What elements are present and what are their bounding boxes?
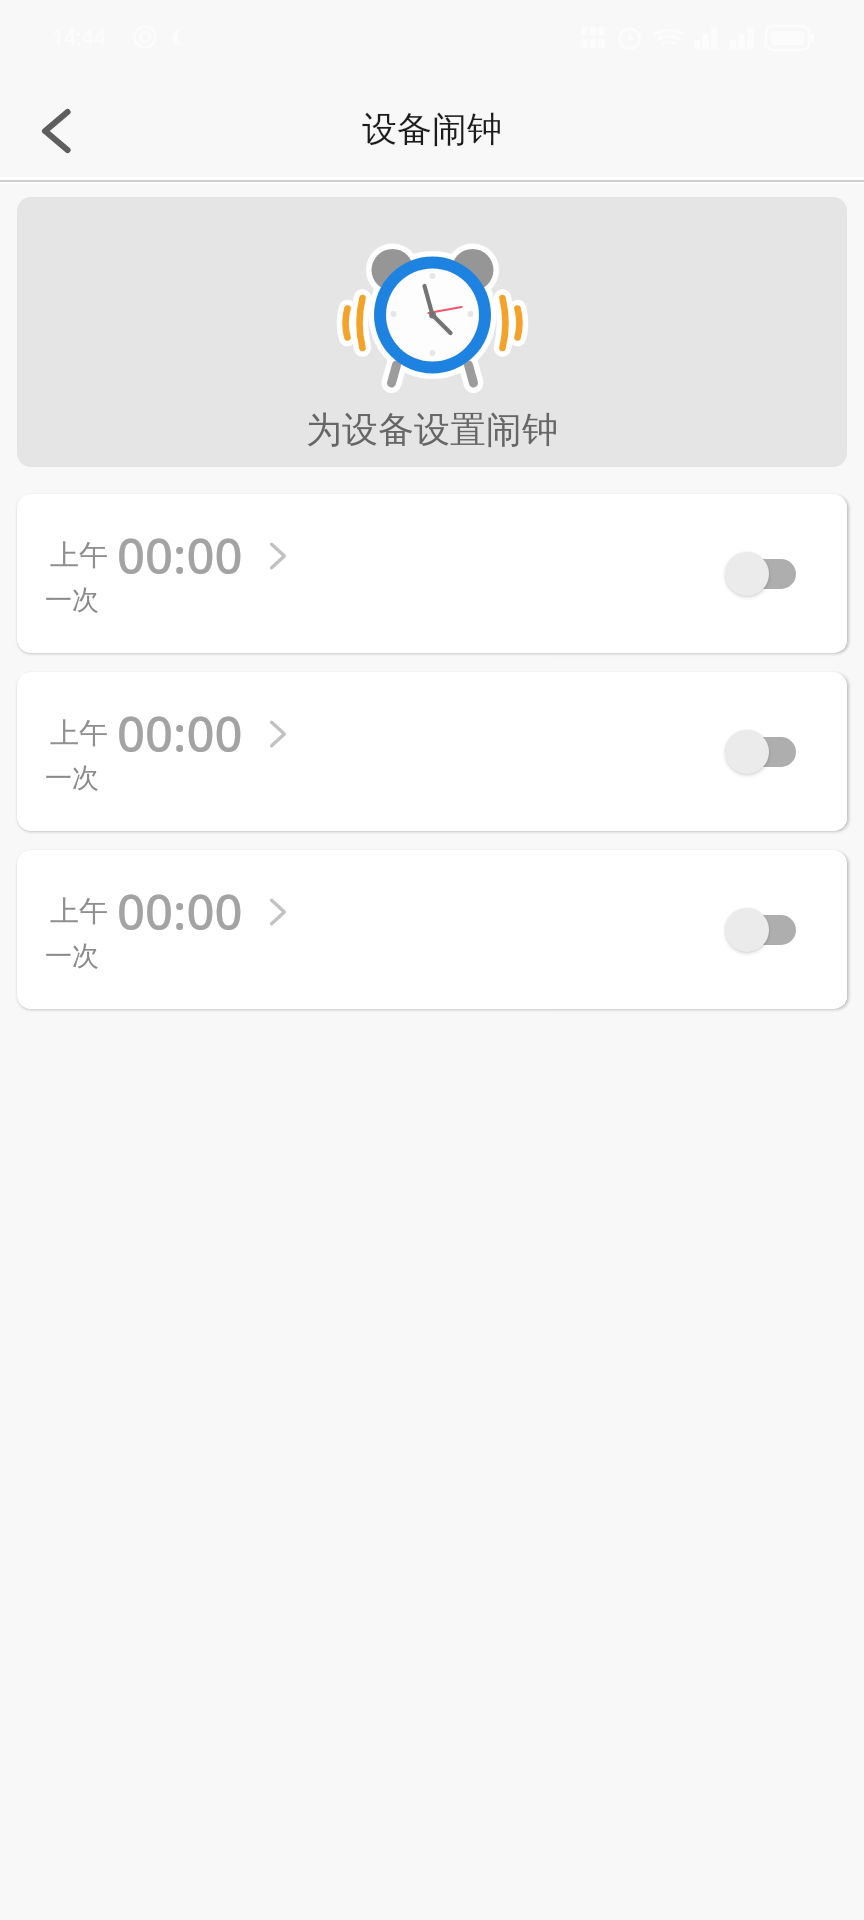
button[interactable]: 为设备设置闹钟: [17, 197, 847, 467]
staticText: 设备闹钟: [362, 107, 502, 151]
button[interactable]: Toggle alarm: [725, 908, 796, 952]
button[interactable]: 上午: [17, 850, 847, 1009]
staticText: 00:00: [117, 700, 243, 767]
staticText: 00:00: [117, 522, 243, 589]
staticText: 00:00: [117, 878, 243, 945]
button[interactable]: 上午: [17, 494, 847, 653]
button[interactable]: Toggle alarm: [725, 730, 796, 774]
button[interactable]: Back: [20, 93, 96, 169]
staticText: 上午: [50, 893, 108, 930]
staticText: 一次: [45, 761, 99, 795]
button[interactable]: Toggle alarm: [725, 552, 796, 596]
staticText: 上午: [50, 537, 108, 574]
button[interactable]: 上午: [17, 672, 847, 831]
staticText: 上午: [50, 715, 108, 752]
staticText: 一次: [45, 939, 99, 973]
staticText: 为设备设置闹钟: [306, 407, 558, 452]
staticText: 一次: [45, 583, 99, 617]
